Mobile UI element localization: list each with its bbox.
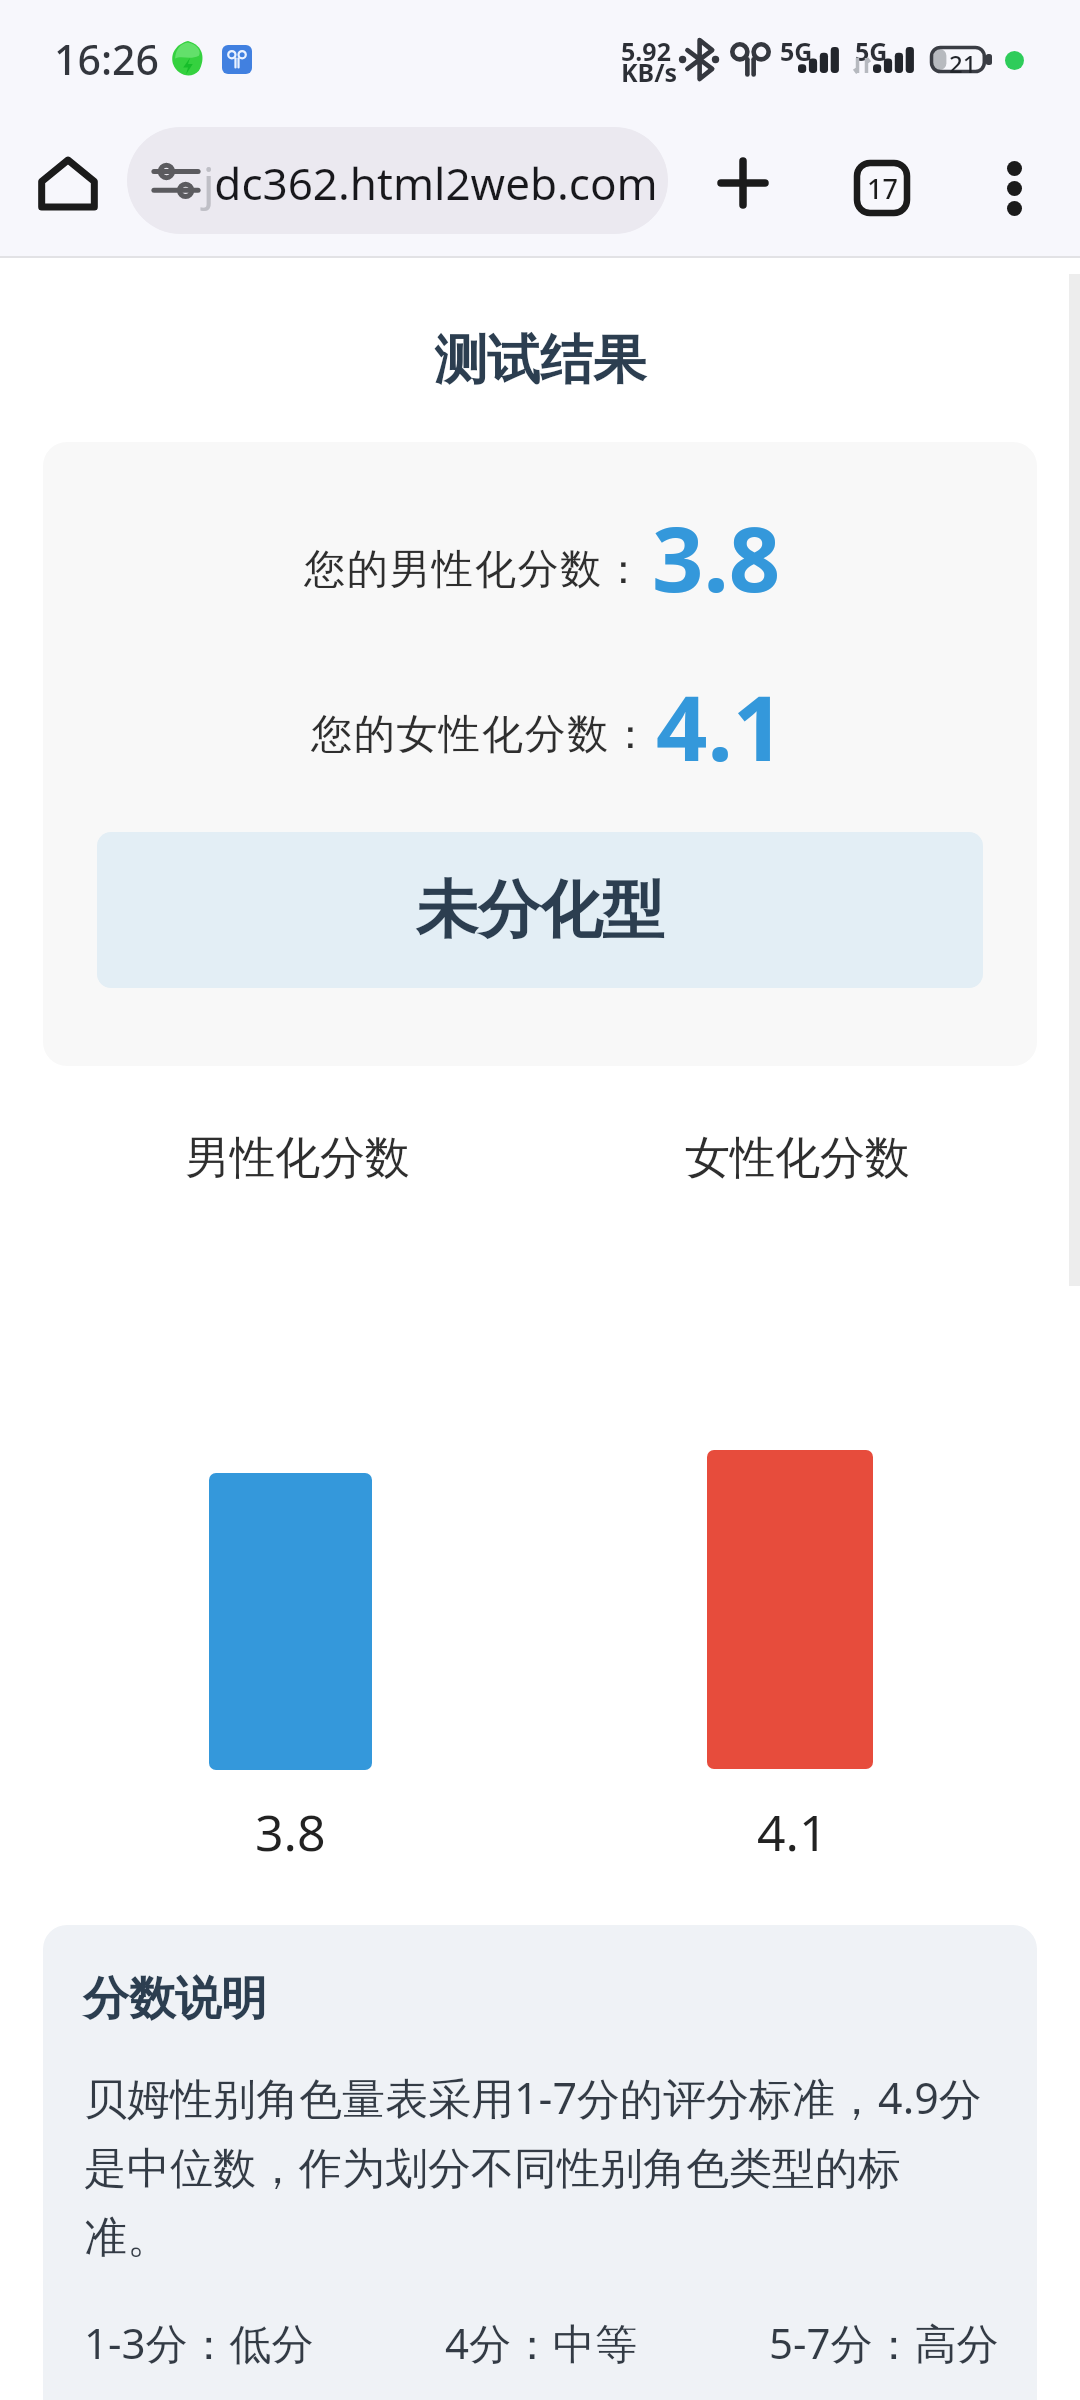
staticText: 1-3分：低分 <box>84 2314 314 2371</box>
staticText: 16:26 <box>54 31 159 87</box>
staticText: jdc362.html2web.com <box>203 153 658 213</box>
staticText: 您的男性化分数： <box>304 544 646 596</box>
button[interactable]: New tab <box>702 142 784 224</box>
staticText: 3.8 <box>652 496 781 619</box>
staticText: 分数说明 <box>83 1970 267 2028</box>
staticText: KB/s <box>621 55 678 89</box>
staticText: 4分：中等 <box>445 2314 638 2371</box>
staticText: 17 <box>867 170 898 207</box>
staticText: 5.92 <box>621 34 671 68</box>
staticText: 5-7分：高分 <box>769 2314 999 2371</box>
button[interactable]: Open tabs <box>841 147 923 229</box>
staticText: 3.8 <box>255 1798 326 1866</box>
staticText: 贝姆性别角色量表采用1-7分的评分标准，4.9分 是中位数，作为划分不同性别角色… <box>84 2068 1036 2264</box>
staticText: 女性化分数 <box>685 1130 910 1187</box>
button[interactable]: More options <box>973 147 1055 229</box>
button[interactable]: Home <box>27 142 109 224</box>
staticText: 您的女性化分数： <box>311 709 653 761</box>
staticText: 未分化型 <box>416 871 664 949</box>
staticText: 21 <box>949 47 977 74</box>
staticText: 男性化分数 <box>185 1130 410 1187</box>
staticText: 5G <box>780 34 813 68</box>
staticText: 4.1 <box>757 1798 828 1866</box>
button[interactable]: jdc362.html2web.com <box>127 127 668 234</box>
staticText: 测试结果 <box>0 327 1080 394</box>
staticText: 4.1 <box>656 665 785 788</box>
staticText: 5G <box>855 34 888 68</box>
